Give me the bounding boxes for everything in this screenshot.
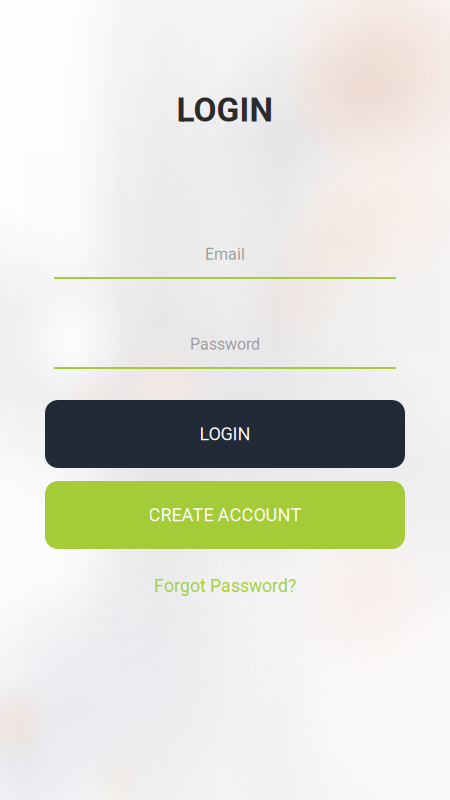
staticText: Password [190,335,260,354]
button[interactable]: Email [54,245,396,279]
staticText: LOGIN [199,423,250,445]
staticText: LOGIN [176,90,273,130]
button[interactable]: Password [54,335,396,369]
button[interactable]: CREATE ACCOUNT [45,481,405,549]
staticText: Email [205,245,245,264]
button[interactable]: Forgot Password? [125,566,325,606]
staticText: Forgot Password? [154,576,296,596]
button[interactable]: LOGIN [45,400,405,468]
staticText: CREATE ACCOUNT [148,504,301,526]
